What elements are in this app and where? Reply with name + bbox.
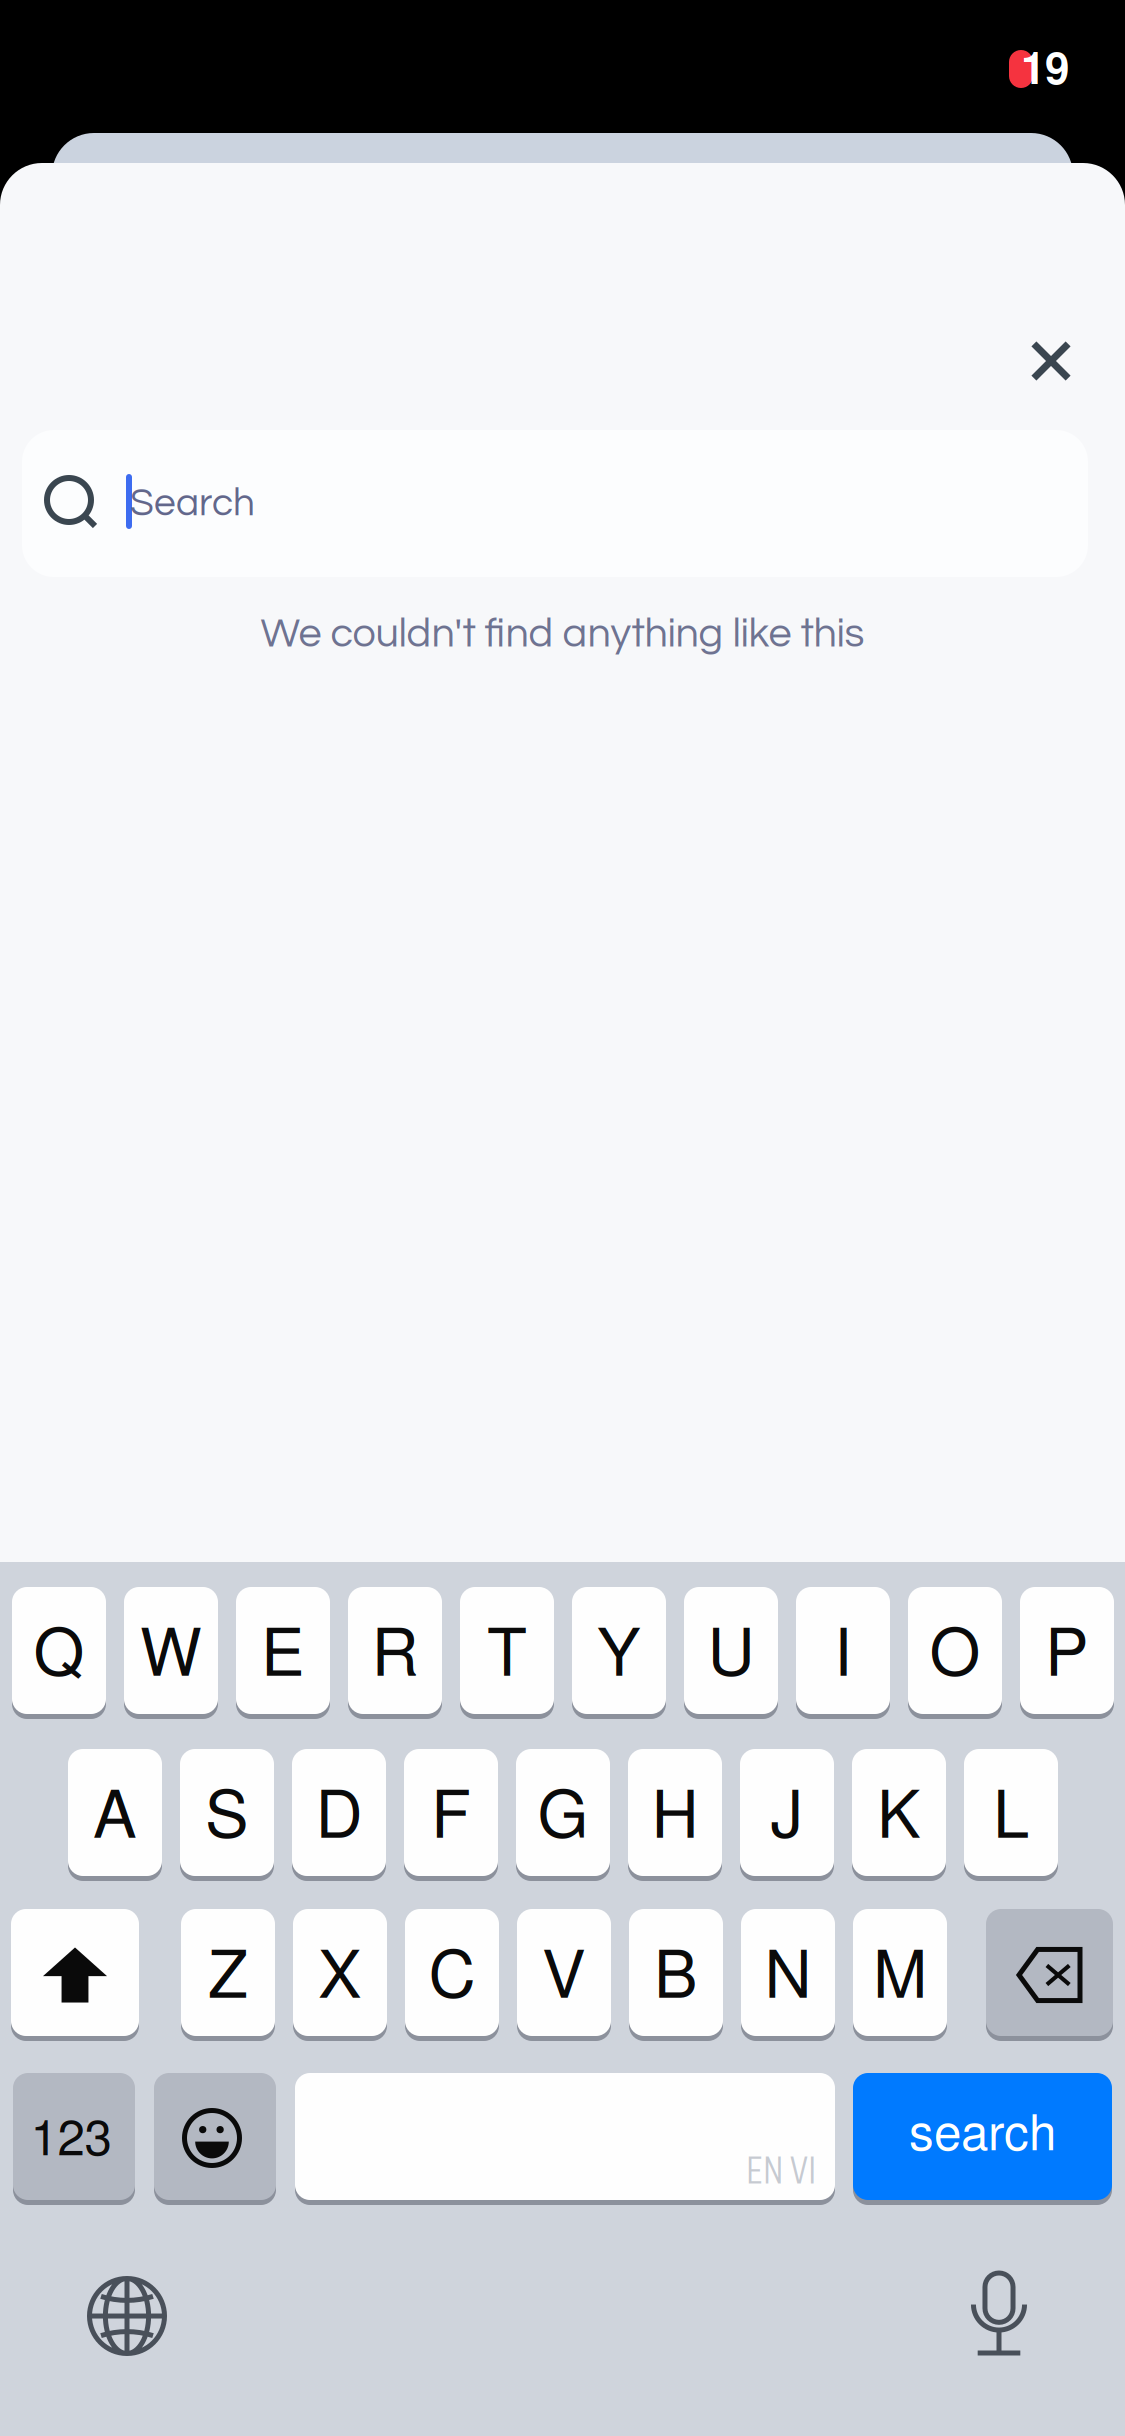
button[interactable]: D — [292, 1749, 386, 1881]
button[interactable]: Next keyboard — [52, 2241, 202, 2391]
staticText: search — [909, 2094, 1056, 2164]
button[interactable]: E — [236, 1587, 330, 1719]
staticText: V — [542, 1923, 586, 2016]
staticText: U — [707, 1601, 754, 1694]
staticText: X — [318, 1923, 362, 2016]
staticText: C — [428, 1923, 475, 2016]
button[interactable]: Z — [181, 1909, 275, 2041]
button[interactable]: B — [629, 1909, 723, 2041]
button[interactable]: K — [852, 1749, 946, 1881]
button[interactable]: H — [628, 1749, 722, 1881]
button[interactable]: U — [684, 1587, 778, 1719]
staticText: T — [487, 1601, 527, 1694]
button[interactable]: Delete — [986, 1909, 1113, 2041]
staticText: We couldn't find anything like this — [260, 613, 864, 655]
staticText: H — [651, 1763, 698, 1856]
staticText: D — [315, 1763, 362, 1856]
button[interactable]: Numbers — [13, 2073, 135, 2205]
button[interactable]: I — [796, 1587, 890, 1719]
staticText: F — [431, 1763, 471, 1856]
staticText: P — [1045, 1601, 1089, 1694]
button[interactable]: R — [348, 1587, 442, 1719]
button[interactable]: Dictate — [924, 2238, 1074, 2388]
button[interactable]: Q — [12, 1587, 106, 1719]
staticText: I — [834, 1601, 852, 1694]
staticText: 19 — [1021, 34, 1069, 97]
staticText: J — [770, 1763, 803, 1856]
staticText: EN VI — [746, 2140, 816, 2200]
staticText: G — [537, 1763, 588, 1856]
staticText: M — [873, 1923, 927, 2016]
button[interactable]: Y — [572, 1587, 666, 1719]
button[interactable]: N — [741, 1909, 835, 2041]
staticText: S — [205, 1763, 249, 1856]
button[interactable]: Emoji — [154, 2073, 276, 2205]
staticText: A — [93, 1763, 137, 1856]
staticText: Y — [597, 1601, 641, 1694]
staticText: Search — [130, 484, 255, 523]
button[interactable]: W — [124, 1587, 218, 1719]
button[interactable]: C — [405, 1909, 499, 2041]
staticText: O — [929, 1601, 980, 1694]
staticText: B — [654, 1923, 698, 2016]
staticText: K — [877, 1763, 921, 1856]
button[interactable]: M — [853, 1909, 947, 2041]
button[interactable]: J — [740, 1749, 834, 1881]
button[interactable]: A — [68, 1749, 162, 1881]
button[interactable]: L — [964, 1749, 1058, 1881]
button[interactable]: S — [180, 1749, 274, 1881]
staticText: Q — [33, 1601, 84, 1694]
staticText: E — [261, 1601, 305, 1694]
staticText: L — [993, 1763, 1029, 1856]
button[interactable]: X — [293, 1909, 387, 2041]
staticText: 123 — [30, 2099, 111, 2169]
button[interactable]: T — [460, 1587, 554, 1719]
button[interactable]: O — [908, 1587, 1002, 1719]
button[interactable]: P — [1020, 1587, 1114, 1719]
button[interactable]: search — [853, 2073, 1112, 2205]
button[interactable]: G — [516, 1749, 610, 1881]
button[interactable]: V — [517, 1909, 611, 2041]
button[interactable]: Close — [985, 295, 1117, 427]
staticText: N — [764, 1923, 811, 2016]
staticText: Z — [208, 1923, 248, 2016]
staticText: W — [140, 1601, 202, 1694]
button[interactable]: Space — [295, 2073, 835, 2205]
button[interactable]: Shift — [11, 1909, 139, 2041]
staticText: R — [371, 1601, 418, 1694]
button[interactable]: F — [404, 1749, 498, 1881]
